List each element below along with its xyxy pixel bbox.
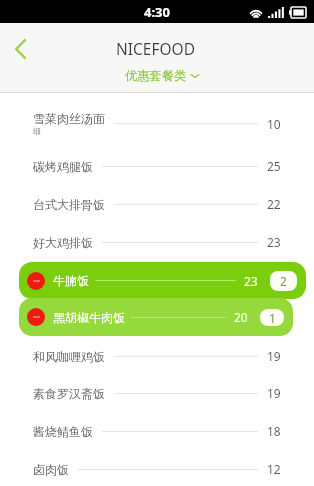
staticText: 23 <box>244 273 258 289</box>
staticText: 酱烧鲭鱼饭 <box>33 424 93 439</box>
staticText: 台式大排骨饭 <box>33 197 105 212</box>
button[interactable]: 和风咖喱鸡饭 <box>0 337 314 375</box>
staticText: 雪菜肉丝汤面 <box>33 111 105 126</box>
staticText: 23 <box>267 234 281 250</box>
staticText: 20 <box>234 309 248 325</box>
staticText: 12 <box>267 461 281 477</box>
staticText: 优惠套餐类 <box>125 68 187 83</box>
staticText: 19 <box>267 385 281 401</box>
button[interactable]: Remove item <box>19 298 293 336</box>
button[interactable]: 好大鸡排饭 <box>0 223 314 261</box>
button[interactable]: Remove item <box>27 308 45 326</box>
staticText: 19 <box>267 348 281 364</box>
staticText: 25 <box>267 158 281 174</box>
staticText: 碳烤鸡腿饭 <box>33 159 93 174</box>
staticText: 1 <box>269 310 276 326</box>
button[interactable]: 碳烤鸡腿饭 <box>0 147 314 185</box>
staticText: 10 <box>267 116 281 132</box>
staticText: 黑胡椒牛肉饭 <box>53 310 125 325</box>
button[interactable]: 雪菜肉丝汤面 <box>0 99 314 148</box>
button[interactable]: 台式大排骨饭 <box>0 185 314 223</box>
staticText: 细 <box>33 126 41 136</box>
staticText: 2 <box>280 273 287 289</box>
button[interactable]: 素食罗汉斋饭 <box>0 374 314 412</box>
button[interactable]: 优惠套餐类 <box>122 68 202 83</box>
staticText: NICEFOOD <box>116 38 196 59</box>
staticText: 卤肉饭 <box>33 462 69 477</box>
button[interactable]: Remove item <box>19 262 306 299</box>
staticText: 4:30 <box>144 3 170 21</box>
staticText: 18 <box>267 423 281 439</box>
button[interactable]: Back <box>5 32 35 66</box>
staticText: 素食罗汉斋饭 <box>33 386 105 401</box>
button[interactable]: Remove item <box>27 272 45 290</box>
staticText: 好大鸡排饭 <box>33 235 93 250</box>
button[interactable]: 酱烧鲭鱼饭 <box>0 412 314 450</box>
staticText: 和风咖喱鸡饭 <box>33 349 105 364</box>
staticText: 22 <box>267 196 281 212</box>
button[interactable]: 卤肉饭 <box>0 450 314 486</box>
staticText: 牛腩饭 <box>53 273 89 288</box>
